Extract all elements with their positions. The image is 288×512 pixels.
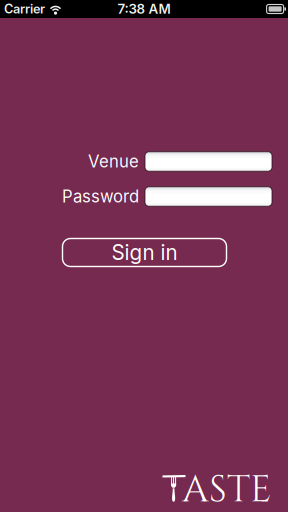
staticText: Venue (88, 151, 139, 172)
staticText: Sign in (111, 240, 177, 265)
button[interactable]: Sign in (62, 238, 226, 266)
staticText: Carrier (4, 1, 45, 17)
staticText: 7:38 AM (117, 1, 170, 17)
staticText: ASTE (182, 465, 272, 512)
staticText: Password (62, 186, 139, 207)
